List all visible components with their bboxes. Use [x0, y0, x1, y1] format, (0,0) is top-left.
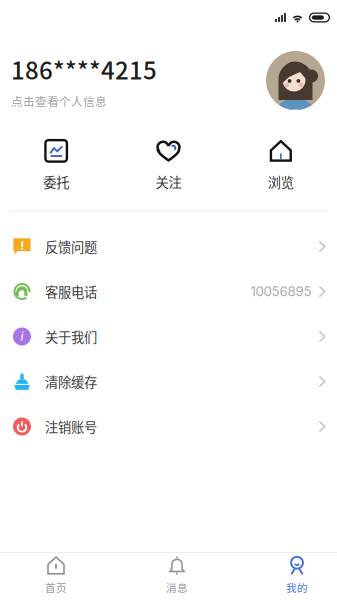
button[interactable]: 我的: [262, 553, 332, 600]
staticText: i: [20, 329, 23, 344]
button[interactable]: 个人头像: [266, 51, 325, 110]
staticText: 注销账号: [45, 417, 97, 436]
staticText: 首页: [45, 580, 67, 595]
button[interactable]: 186****4215: [11, 55, 211, 106]
button[interactable]: 客服电话: [0, 269, 337, 314]
staticText: 浏览: [268, 172, 294, 191]
button[interactable]: 浏览: [225, 141, 337, 190]
staticText: 10056895: [250, 283, 311, 300]
button[interactable]: 清除缓存: [0, 359, 337, 404]
button[interactable]: 反馈问题: [0, 224, 337, 269]
staticText: 186****4215: [11, 52, 157, 86]
button[interactable]: 首页: [21, 553, 91, 600]
staticText: 消息: [166, 580, 188, 595]
staticText: 关于我们: [45, 327, 97, 346]
button[interactable]: 注销账号: [0, 404, 337, 449]
staticText: 委托: [43, 172, 69, 191]
staticText: 我的: [286, 580, 308, 595]
button[interactable]: 委托: [0, 141, 112, 190]
staticText: 关注: [155, 172, 181, 191]
staticText: 客服电话: [45, 282, 97, 301]
staticText: 清除缓存: [45, 372, 97, 391]
button[interactable]: i: [0, 314, 337, 359]
button[interactable]: 消息: [142, 553, 212, 600]
button[interactable]: 关注: [112, 141, 225, 190]
staticText: 反馈问题: [45, 237, 97, 256]
staticText: 点击查看个人信息: [11, 92, 107, 109]
